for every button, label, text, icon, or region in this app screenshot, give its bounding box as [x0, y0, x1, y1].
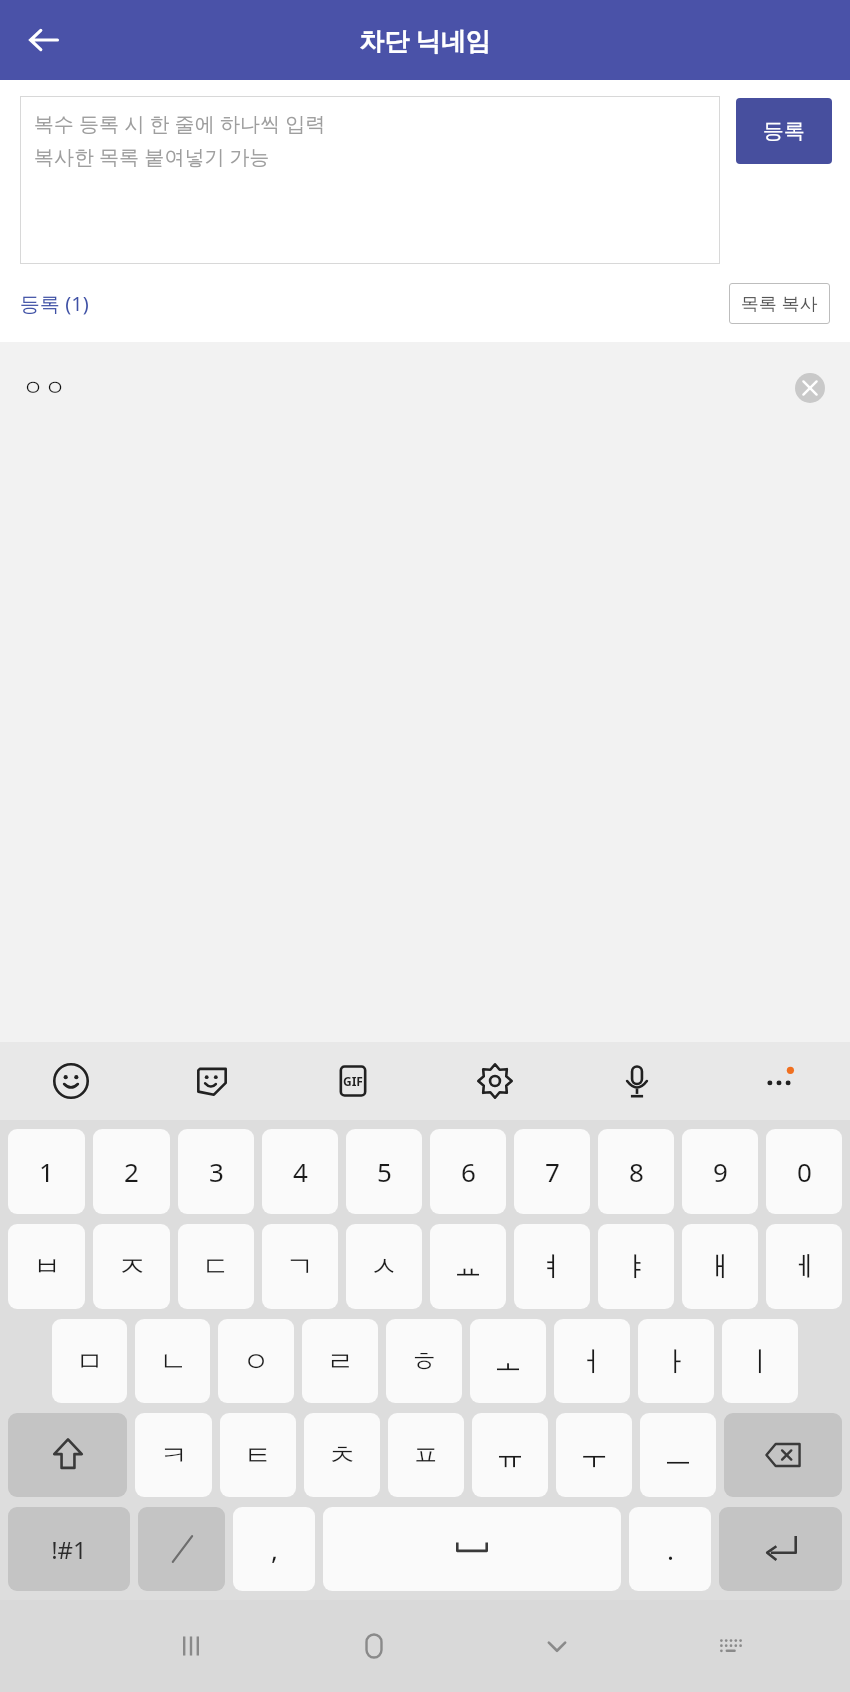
button[interactable]: ㄹ	[302, 1319, 378, 1403]
staticText: ㅣ	[746, 1344, 774, 1379]
button[interactable]: ㅓ	[554, 1319, 630, 1403]
staticText: ㅗ	[494, 1344, 522, 1379]
button[interactable]: Back	[14, 10, 74, 70]
button[interactable]: !#1	[8, 1507, 130, 1591]
button[interactable]: ㅁ	[52, 1319, 127, 1403]
staticText: 목록 복사	[741, 291, 818, 316]
staticText: 8	[629, 1154, 644, 1189]
button[interactable]: Recents	[100, 1600, 282, 1692]
button[interactable]: ㅕ	[514, 1224, 590, 1309]
staticText: ㅕ	[538, 1249, 566, 1284]
button[interactable]: 1	[8, 1129, 85, 1214]
staticText: ㅇㅇ	[22, 374, 66, 402]
button[interactable]: ,	[233, 1507, 315, 1591]
button[interactable]: Space	[323, 1507, 621, 1591]
button[interactable]: ㅣ	[722, 1319, 798, 1403]
staticText: ,	[271, 1532, 278, 1567]
button[interactable]: emoji	[0, 1042, 141, 1120]
staticText: 9	[713, 1154, 728, 1189]
staticText: 복수 등록 시 한 줄에 하나씩 입력	[34, 110, 326, 137]
button[interactable]: Home	[282, 1600, 465, 1692]
button[interactable]: 2	[93, 1129, 170, 1214]
staticText: ㄷ	[202, 1249, 230, 1284]
button[interactable]: 9	[682, 1129, 758, 1214]
staticText: ㅋ	[160, 1438, 188, 1473]
button[interactable]: Delete	[790, 368, 830, 408]
staticText: 차단 닉네임	[359, 23, 491, 57]
staticText: 3	[209, 1154, 224, 1189]
staticText: ㅜ	[580, 1438, 608, 1473]
button[interactable]: .	[629, 1507, 711, 1591]
button[interactable]: ㅈ	[93, 1224, 170, 1309]
staticText: 7	[545, 1154, 560, 1189]
staticText: ㅊ	[328, 1438, 356, 1473]
button[interactable]: ㅔ	[766, 1224, 842, 1309]
button[interactable]: ㅑ	[598, 1224, 674, 1309]
button[interactable]: 목록 복사	[729, 283, 830, 324]
button[interactable]: mic	[566, 1042, 708, 1120]
staticText: ㄹ	[326, 1344, 354, 1379]
button[interactable]: Backspace	[724, 1413, 842, 1497]
button[interactable]: 5	[346, 1129, 422, 1214]
button[interactable]: ㄴ	[135, 1319, 210, 1403]
button[interactable]: ㅇㅇ	[0, 342, 850, 434]
button[interactable]: 3	[178, 1129, 254, 1214]
button[interactable]: ㄷ	[178, 1224, 254, 1309]
staticText: ㅓ	[578, 1344, 606, 1379]
button[interactable]: ㅐ	[682, 1224, 758, 1309]
button[interactable]: 6	[430, 1129, 506, 1214]
staticText: ㄱ	[286, 1249, 314, 1284]
button[interactable]: 4	[262, 1129, 338, 1214]
staticText: ㅇ	[242, 1344, 270, 1379]
button[interactable]: ㅋ	[135, 1413, 212, 1497]
button[interactable]: ㅇ	[218, 1319, 294, 1403]
staticText: ㅐ	[706, 1249, 734, 1284]
button[interactable]: settings	[424, 1042, 566, 1120]
button[interactable]: ㅠ	[472, 1413, 548, 1497]
staticText: ㅅ	[370, 1249, 398, 1284]
staticText: ㅁ	[76, 1344, 104, 1379]
staticText: 1	[39, 1154, 54, 1189]
button[interactable]: ㅂ	[8, 1224, 85, 1309]
button[interactable]: more	[708, 1042, 850, 1120]
button[interactable]: 7	[514, 1129, 590, 1214]
staticText: 복사한 목록 붙여넣기 가능	[34, 143, 270, 170]
button[interactable]: ㅛ	[430, 1224, 506, 1309]
button[interactable]: ㄱ	[262, 1224, 338, 1309]
button[interactable]: ㅌ	[220, 1413, 296, 1497]
button[interactable]: Shift	[8, 1413, 127, 1497]
staticText: ㄴ	[159, 1344, 187, 1379]
staticText: ㅍ	[412, 1438, 440, 1473]
staticText: 6	[461, 1154, 476, 1189]
button[interactable]: 복수 등록 시 한 줄에 하나씩 입력	[20, 96, 720, 264]
button[interactable]: sticker	[141, 1042, 282, 1120]
button[interactable]: 8	[598, 1129, 674, 1214]
staticText: 4	[293, 1154, 308, 1189]
button[interactable]: Switch keyboard	[648, 1600, 813, 1692]
staticText: ㅌ	[244, 1438, 272, 1473]
staticText: 0	[797, 1154, 812, 1189]
button[interactable]: gif	[282, 1042, 424, 1120]
button[interactable]: Enter	[719, 1507, 842, 1591]
button[interactable]: ㅎ	[386, 1319, 462, 1403]
button[interactable]: Hide keyboard	[465, 1600, 648, 1692]
staticText: GIF	[343, 1073, 363, 1089]
staticText: ㅈ	[118, 1249, 146, 1284]
staticText: ㅠ	[496, 1438, 524, 1473]
button[interactable]: 등록	[736, 98, 832, 164]
button[interactable]: 0	[766, 1129, 842, 1214]
button[interactable]: ㅜ	[556, 1413, 632, 1497]
staticText: ㅎ	[410, 1344, 438, 1379]
button[interactable]: 등록 (1)	[20, 290, 89, 317]
staticText: ㅂ	[33, 1249, 61, 1284]
button[interactable]: ㅍ	[388, 1413, 464, 1497]
button[interactable]: ㅗ	[470, 1319, 546, 1403]
button[interactable]: ㅡ	[640, 1413, 716, 1497]
staticText: 5	[377, 1154, 392, 1189]
button[interactable]: Korean English	[138, 1507, 225, 1591]
button[interactable]: ㅏ	[638, 1319, 714, 1403]
staticText: ㅑ	[622, 1249, 650, 1284]
button[interactable]: ㅅ	[346, 1224, 422, 1309]
button[interactable]: ㅊ	[304, 1413, 380, 1497]
staticText: .	[667, 1532, 674, 1567]
